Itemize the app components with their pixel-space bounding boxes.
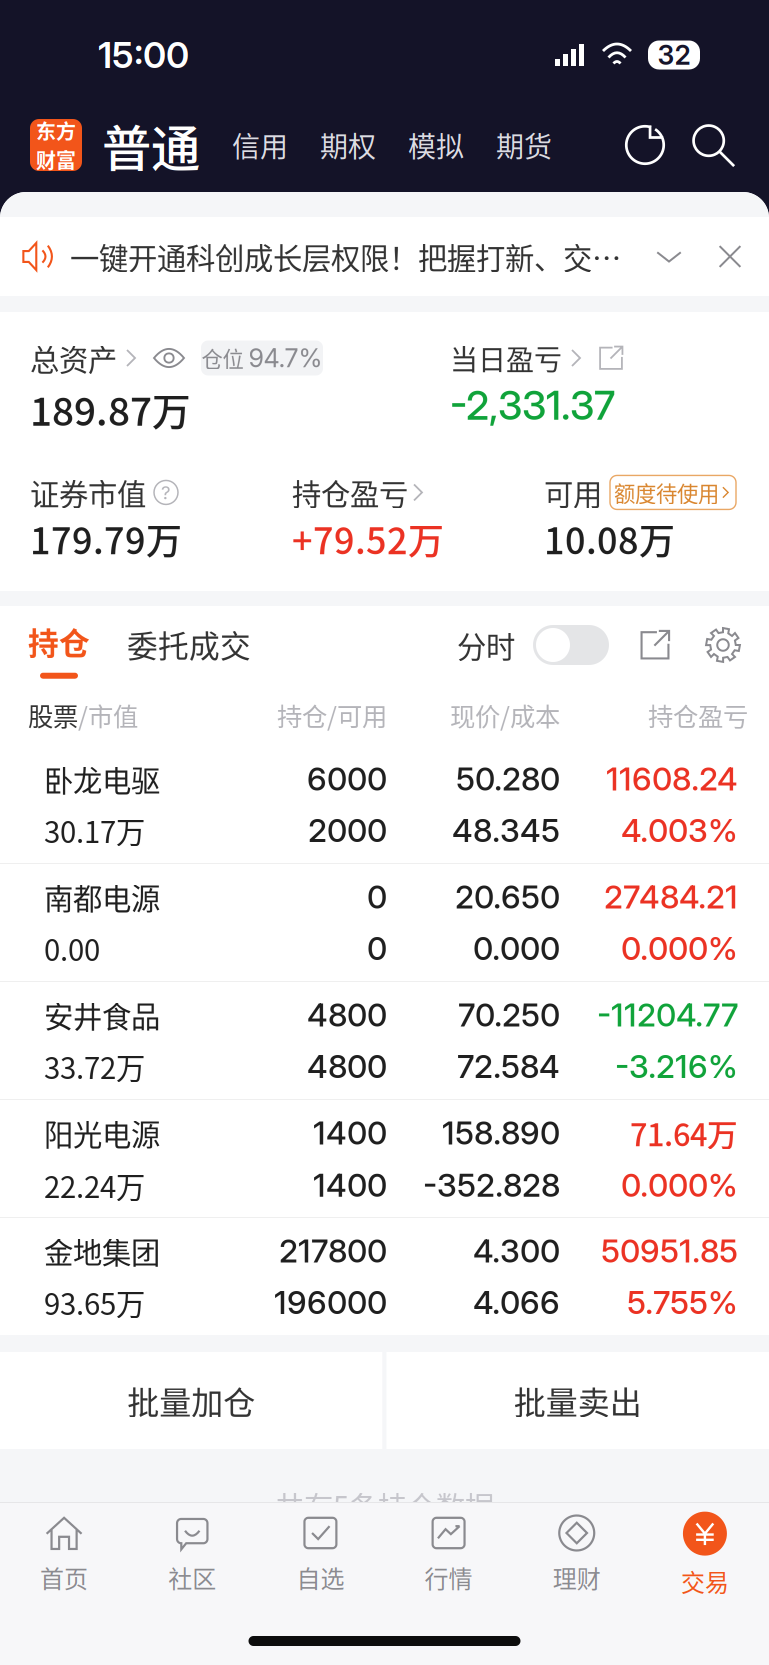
staticText: 4800 [307,1047,387,1086]
staticText: 卧龙电驱 [44,757,160,800]
button[interactable]: 金地集团 [0,1218,769,1335]
staticText: 4.300 [473,1231,560,1270]
button[interactable]: 自选 [256,1503,384,1604]
staticText: -11204.77 [597,995,738,1034]
button[interactable]: 社区 [128,1503,256,1604]
staticText: 行情 [425,1560,473,1595]
button[interactable]: 理财 [513,1503,641,1604]
staticText: -2,331.37 [450,381,615,429]
button[interactable]: 安井食品 [0,982,769,1099]
staticText: 持仓 [28,619,90,664]
staticText: 4.066 [473,1283,560,1322]
staticText: 期权 [320,125,376,165]
staticText: 1400 [313,1113,387,1152]
staticText: 共有5条持仓数据 [275,1484,494,1526]
button[interactable]: Share [639,629,671,661]
staticText: 33.72万 [44,1045,145,1087]
staticText: 安井食品 [44,993,160,1036]
staticText: 196000 [274,1283,387,1322]
staticText: 阳光电源 [44,1111,160,1154]
staticText: 0 [367,877,387,916]
button[interactable]: Settings [705,627,741,663]
button[interactable]: Time-share toggle [533,625,609,665]
staticText: 27484.21 [604,877,738,916]
staticText: 94.7% [248,343,322,373]
staticText: 财富 [36,145,76,174]
staticText: 分时 [457,624,515,666]
staticText: 现价/成本 [450,697,560,733]
button[interactable]: 期权 [320,125,376,165]
staticText: 71.64万 [630,1111,738,1155]
staticText: 当日盈亏 [450,338,562,378]
staticText: 15:00 [98,33,189,77]
button[interactable]: 卧龙电驱 [0,746,769,863]
staticText: 仓位 [201,343,243,373]
staticText: 20.650 [455,877,560,916]
button[interactable]: 模拟 [408,125,464,165]
staticText: 委托成交 [127,622,251,666]
staticText: 50951.85 [601,1231,738,1270]
staticText: 2000 [308,811,387,850]
staticText: 证券市值 [30,471,146,514]
button[interactable]: 信用 [232,125,288,165]
button[interactable]: 委托成交 [127,606,251,684]
staticText: 0 [367,929,387,968]
button[interactable]: 首页 [0,1503,128,1604]
staticText: 金地集团 [44,1229,160,1272]
button[interactable]: Search [689,121,737,169]
button[interactable]: Close [717,243,743,269]
staticText: 179.79万 [30,512,182,564]
button[interactable]: 批量加仓 [0,1352,382,1449]
staticText: 30.17万 [44,809,145,851]
button[interactable]: Expand [655,242,683,270]
staticText: 158.890 [442,1113,560,1152]
button[interactable]: 行情 [384,1503,513,1604]
staticText: 0.000% [621,1166,738,1204]
staticText: ? [161,481,171,504]
staticText: -3.216% [615,1047,738,1086]
staticText: 1400 [313,1166,387,1204]
staticText: 5.755% [627,1283,738,1322]
staticText: 总资产 [30,337,117,379]
staticText: 持仓盈亏 [648,697,748,733]
staticText: 217800 [279,1231,387,1270]
button[interactable]: 批量卖出 [386,1352,769,1449]
staticText: 普通 [102,109,200,181]
staticText: 批量卖出 [514,1377,642,1424]
staticText: 93.65万 [44,1281,145,1323]
button[interactable]: Refresh [621,121,669,169]
staticText: 持仓盈亏 [292,471,408,514]
staticText: +79.52万 [292,512,444,564]
staticText: 持仓/可用 [277,697,387,733]
staticText: 32 [657,39,690,71]
staticText: 72.584 [457,1047,560,1086]
staticText: 模拟 [408,125,464,165]
staticText: 11608.24 [606,759,738,798]
staticText: 4.003% [621,811,738,850]
staticText: 股票 [28,697,78,733]
staticText: 10.08万 [544,512,675,564]
staticText: 可用 [544,471,602,514]
staticText: 4800 [307,995,387,1034]
button[interactable]: 南都电源 [0,864,769,981]
staticText: 70.250 [458,995,560,1034]
staticText: 0.000% [621,929,738,968]
button[interactable]: 交易 [641,1503,769,1604]
staticText: 48.345 [452,811,560,850]
staticText: 22.24万 [44,1164,145,1206]
staticText: 社区 [168,1560,216,1595]
staticText: 信用 [232,125,288,165]
staticText: 首页 [40,1560,88,1595]
staticText: 期货 [496,125,552,165]
staticText: 交易 [681,1564,729,1598]
button[interactable]: 持仓 [28,606,90,684]
staticText: 6000 [307,759,387,798]
staticText: 自选 [296,1560,344,1595]
staticText: -352.828 [423,1166,560,1204]
staticText: 一键开通科创成长层权限！把握打新、交易… [70,235,647,278]
button[interactable]: 阳光电源 [0,1100,769,1217]
staticText: 理财 [553,1560,601,1595]
button[interactable]: 期货 [496,125,552,165]
staticText: /市值 [78,697,138,733]
staticText: 0.000 [473,929,560,968]
